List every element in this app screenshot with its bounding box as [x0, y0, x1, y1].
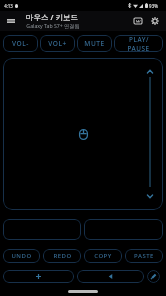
button[interactable]: Keyboard	[129, 11, 146, 31]
button[interactable]: Left click	[3, 219, 81, 240]
button[interactable]: MUTE	[77, 35, 112, 52]
button[interactable]: UNDO	[3, 249, 40, 263]
staticText: MUTE	[84, 39, 105, 48]
button[interactable]: Edit	[147, 270, 160, 283]
staticText: PAUSE	[127, 44, 150, 52]
staticText: 93%	[149, 3, 158, 9]
staticText: UNDO	[11, 252, 32, 260]
button[interactable]: PASTE	[125, 249, 163, 263]
button[interactable]: COPY	[84, 249, 122, 263]
button[interactable]: VOL+	[40, 35, 75, 52]
staticText: REDO	[53, 252, 72, 260]
staticText: 4:13	[4, 3, 13, 9]
button[interactable]: Settings	[146, 11, 163, 31]
button[interactable]: REDO	[43, 249, 81, 263]
button[interactable]: Menu	[0, 11, 22, 31]
staticText: COPY	[94, 252, 112, 260]
button[interactable]: Right click	[84, 219, 163, 240]
staticText: PASTE	[134, 252, 154, 260]
button[interactable]: VOL-	[3, 35, 38, 52]
button[interactable]: Scroll	[137, 58, 163, 210]
staticText: VOL+	[48, 39, 67, 48]
button[interactable]: PLAY/	[114, 35, 163, 52]
staticText: PLAY/	[129, 35, 149, 44]
staticText: 마우스 / 키보드	[26, 12, 78, 22]
button[interactable]: Back	[77, 270, 144, 283]
button[interactable]: Touchpad	[3, 58, 163, 210]
staticText: VOL-	[12, 39, 29, 48]
button[interactable]: Add	[3, 270, 74, 283]
staticText: Galaxy Tab S7+ 연결됨	[26, 22, 80, 29]
